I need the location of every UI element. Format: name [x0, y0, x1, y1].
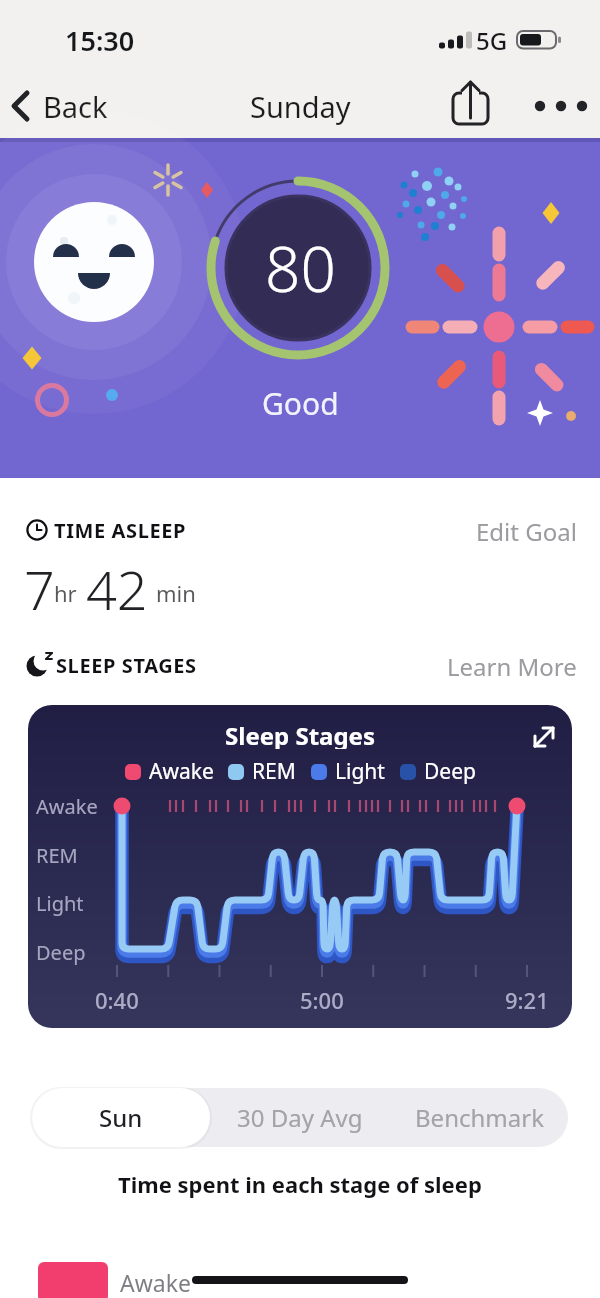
staticText: Awake	[149, 757, 214, 786]
button[interactable]: Learn More	[440, 650, 577, 680]
staticText: Learn More	[447, 650, 577, 680]
staticText: TIME ASLEEP	[54, 517, 187, 544]
staticText: Edit Goal	[476, 515, 577, 545]
staticText: 42	[86, 552, 148, 614]
button[interactable]	[526, 86, 594, 126]
staticText: 80	[265, 226, 336, 310]
staticText: Back	[43, 87, 108, 126]
staticText: Light	[335, 757, 385, 786]
staticText: Sunday	[250, 87, 351, 126]
staticText: Sun	[99, 1101, 143, 1134]
staticText: hr	[54, 578, 77, 608]
staticText: Awake	[120, 1267, 191, 1297]
staticText: SLEEP STAGES	[56, 652, 197, 679]
button[interactable]	[444, 76, 498, 132]
staticText: Good	[262, 383, 339, 424]
button[interactable]	[210, 1088, 390, 1147]
staticText: Deep	[424, 757, 476, 786]
staticText: 5G	[476, 24, 508, 54]
staticText: Benchmark	[415, 1101, 544, 1134]
button[interactable]	[524, 717, 564, 757]
staticText: Awake	[36, 793, 98, 819]
staticText: Light	[36, 890, 84, 916]
staticText: 9:21	[505, 985, 549, 1011]
button[interactable]: Back	[6, 86, 126, 126]
staticText: Deep	[36, 939, 86, 965]
button[interactable]	[390, 1088, 568, 1147]
staticText: 15:30	[65, 22, 135, 56]
staticText: REM	[252, 757, 296, 786]
staticText: 7	[24, 552, 55, 614]
staticText: 30 Day Avg	[237, 1101, 363, 1134]
staticText: min	[156, 578, 196, 608]
staticText: Sleep Stages	[225, 719, 375, 749]
staticText: 0:40	[95, 985, 139, 1011]
staticText: Time spent in each stage of sleep	[118, 1169, 482, 1199]
button[interactable]: Edit Goal	[440, 515, 577, 545]
staticText: 5:00	[300, 985, 344, 1011]
button[interactable]	[32, 1088, 210, 1147]
staticText: REM	[36, 842, 78, 868]
